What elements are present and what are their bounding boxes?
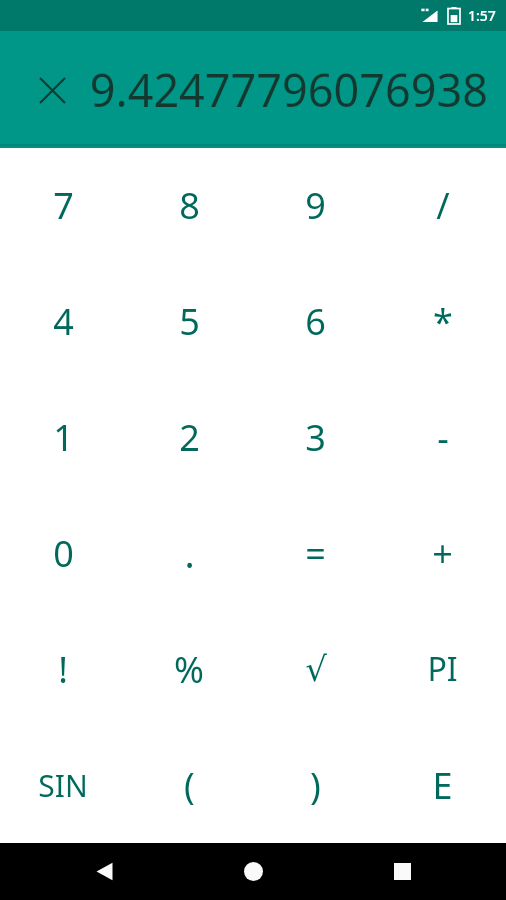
staticText: E xyxy=(432,761,453,810)
button[interactable]: 9.42477796076938 xyxy=(86,31,488,148)
button[interactable]: ( xyxy=(126,727,252,843)
button[interactable]: - xyxy=(379,379,506,495)
staticText: 2 xyxy=(179,413,200,462)
button[interactable]: / xyxy=(379,148,506,263)
button[interactable]: 4 xyxy=(0,263,126,379)
staticText: / xyxy=(436,181,450,230)
staticText: * xyxy=(433,297,453,346)
staticText: 5 xyxy=(179,297,200,346)
staticText: 7 xyxy=(53,181,74,230)
button[interactable]: ) xyxy=(252,727,379,843)
staticText: 0 xyxy=(53,529,74,578)
button[interactable]: * xyxy=(379,263,506,379)
button[interactable]: Back xyxy=(59,843,149,900)
button[interactable]: √ xyxy=(252,611,379,727)
button[interactable]: SIN xyxy=(0,727,126,843)
button[interactable]: 1 xyxy=(0,379,126,495)
button[interactable]: Recents xyxy=(357,843,447,900)
button[interactable]: . xyxy=(126,495,252,611)
button[interactable]: 5 xyxy=(126,263,252,379)
button[interactable]: 3 xyxy=(252,379,379,495)
button[interactable]: + xyxy=(379,495,506,611)
button[interactable]: PI xyxy=(379,611,506,727)
staticText: 1:57 xyxy=(468,6,496,25)
button[interactable]: = xyxy=(252,495,379,611)
staticText: ) xyxy=(310,761,321,810)
staticText: - xyxy=(437,413,449,462)
staticText: + xyxy=(432,529,453,578)
button[interactable]: 9 xyxy=(252,148,379,263)
button[interactable]: 7 xyxy=(0,148,126,263)
button[interactable]: E xyxy=(379,727,506,843)
staticText: SIN xyxy=(38,765,88,806)
staticText: = xyxy=(305,529,326,578)
button[interactable]: 6 xyxy=(252,263,379,379)
staticText: 8 xyxy=(179,181,200,230)
staticText: . xyxy=(184,527,195,579)
button[interactable]: Clear xyxy=(26,64,78,116)
button[interactable]: 2 xyxy=(126,379,252,495)
button[interactable]: ! xyxy=(0,611,126,727)
staticText: √ xyxy=(305,649,327,689)
button[interactable]: 0 xyxy=(0,495,126,611)
button[interactable]: Home xyxy=(208,843,298,900)
staticText: 9 xyxy=(305,181,326,230)
staticText: 3 xyxy=(305,413,326,462)
staticText: ( xyxy=(184,761,195,810)
button[interactable]: % xyxy=(126,611,252,727)
staticText: 1 xyxy=(53,413,74,462)
button[interactable]: 8 xyxy=(126,148,252,263)
staticText: 9.42477796076938 xyxy=(89,59,488,120)
staticText: 6 xyxy=(305,297,326,346)
staticText: % xyxy=(174,645,204,694)
staticText: 4 xyxy=(53,297,74,346)
staticText: ! xyxy=(58,645,68,694)
staticText: PI xyxy=(427,647,458,691)
